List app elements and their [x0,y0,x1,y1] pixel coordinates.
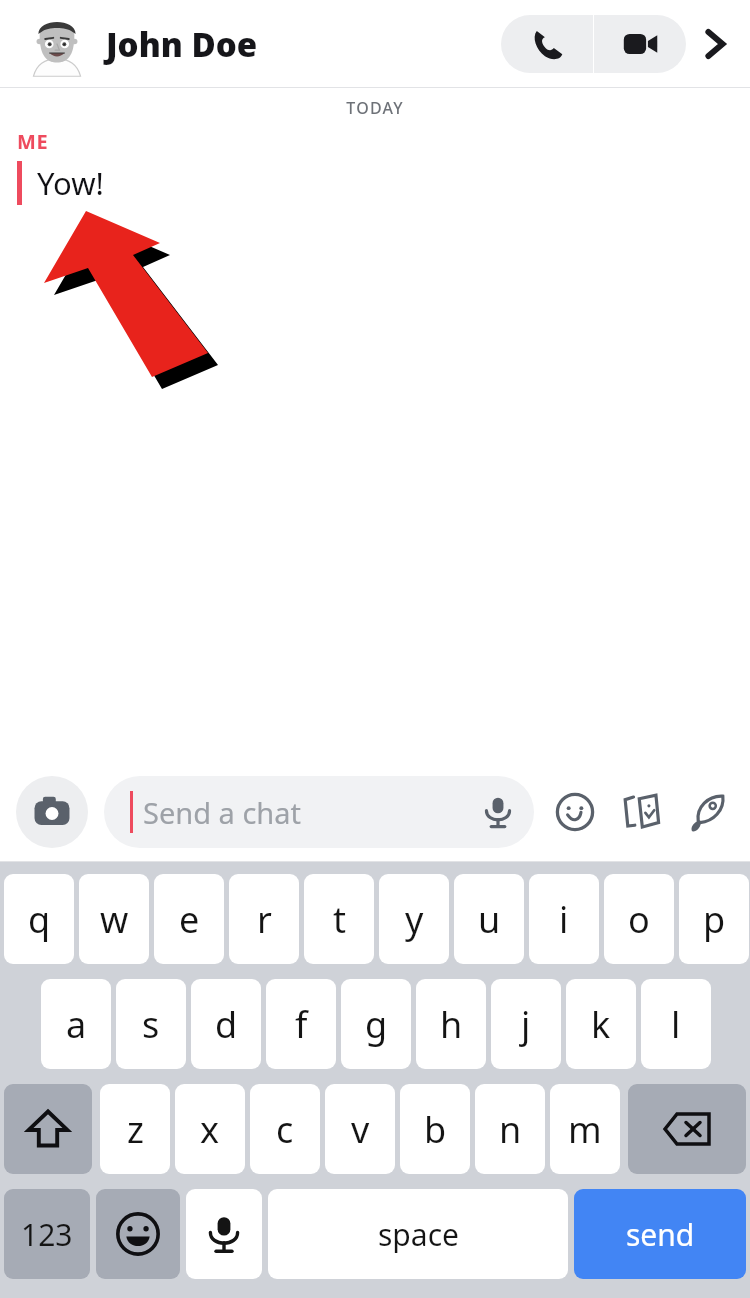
button[interactable]: v [325,1084,395,1177]
staticText: h [440,1000,463,1049]
button[interactable]: More options [686,15,744,73]
button[interactable]: 123 [4,1189,90,1282]
button[interactable]: o [604,874,674,967]
button[interactable]: r [229,874,299,967]
button[interactable]: Voice call [501,15,593,73]
staticText: w [100,895,129,944]
button[interactable]: x [175,1084,245,1177]
button[interactable]: Shift [4,1084,92,1177]
staticText: c [276,1105,294,1154]
staticText: p [703,895,726,944]
button[interactable]: Voice input [186,1189,262,1282]
staticText: k [591,1000,611,1049]
button[interactable]: Emoji [96,1189,180,1282]
staticText: e [179,895,200,944]
button[interactable]: space [268,1189,568,1282]
button[interactable]: Video call [594,15,686,73]
button[interactable]: w [79,874,149,967]
staticText: f [295,1000,308,1049]
button[interactable]: n [475,1084,545,1177]
staticText: i [559,895,569,944]
staticText: m [568,1105,602,1154]
button[interactable]: c [250,1084,320,1177]
staticText: a [66,1000,87,1049]
button[interactable]: g [341,979,411,1072]
button[interactable]: h [416,979,486,1072]
staticText: o [628,895,650,944]
button[interactable]: Rocket [674,779,740,845]
staticText: Yow! [37,162,104,204]
staticText: l [671,1000,681,1049]
staticText: ME [17,128,49,155]
staticText: TODAY [0,97,750,119]
button[interactable]: u [454,874,524,967]
button[interactable]: a [41,979,111,1072]
button[interactable]: Voice message [470,784,526,840]
staticText: Send a chat [143,793,470,832]
staticText: 123 [21,1214,73,1255]
button[interactable]: Backspace [628,1084,746,1177]
staticText: t [333,895,346,944]
button[interactable]: m [550,1084,620,1177]
button[interactable]: John Doe [106,22,258,67]
staticText: space [378,1214,459,1255]
button[interactable]: k [566,979,636,1072]
button[interactable]: y [379,874,449,967]
button[interactable]: q [4,874,74,967]
button[interactable]: i [529,874,599,967]
staticText: q [28,895,51,944]
button[interactable]: s [116,979,186,1072]
staticText: x [200,1105,220,1154]
button[interactable]: e [154,874,224,967]
staticText: d [215,1000,238,1049]
button[interactable]: d [191,979,261,1072]
staticText: v [351,1105,370,1154]
button[interactable]: f [266,979,336,1072]
button[interactable] [26,13,88,75]
staticText: j [521,1000,531,1049]
button[interactable]: l [641,979,711,1072]
staticText: b [424,1105,447,1154]
staticText: z [127,1105,144,1154]
button[interactable]: Stickers [542,779,608,845]
staticText: g [365,1000,388,1049]
button[interactable]: Yow! [0,161,750,205]
staticText: send [626,1214,695,1255]
button[interactable]: t [304,874,374,967]
staticText: u [478,895,501,944]
staticText: r [257,895,272,944]
button[interactable]: b [400,1084,470,1177]
button[interactable]: p [679,874,749,967]
staticText: y [405,895,424,944]
staticText: n [499,1105,522,1154]
button[interactable]: z [100,1084,170,1177]
button[interactable]: j [491,979,561,1072]
button[interactable]: Open camera [16,776,88,848]
staticText: s [142,1000,160,1049]
button[interactable]: send [574,1189,746,1282]
button[interactable]: Send a chat [104,776,534,848]
button[interactable]: Cameos [608,779,674,845]
